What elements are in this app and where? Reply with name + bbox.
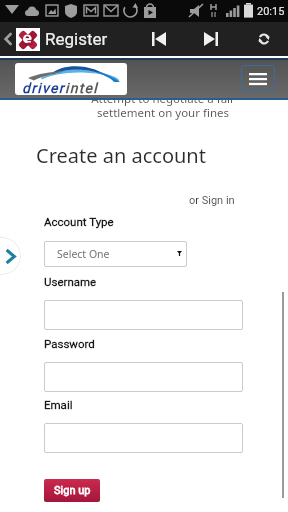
staticText: Account Type [44,215,114,228]
button[interactable]: or Sign in [189,194,235,207]
staticText: 20:15 [257,5,285,18]
staticText: driver [22,80,65,95]
staticText: Sign up [54,484,91,497]
button[interactable]: Next slide [0,237,21,275]
button[interactable]: Account Type [44,241,187,267]
button[interactable]: Next [201,29,221,49]
staticText: Register [45,29,108,49]
staticText: Username [44,275,97,288]
staticText: intel [65,80,99,95]
button[interactable]: Back [0,22,16,56]
staticText: Email [44,398,73,411]
staticText: intel [65,80,99,95]
button[interactable]: Previous [149,29,169,49]
staticText: Attempt to negotiate a fair settlement o… [19,91,288,120]
button[interactable]: Menu [241,65,275,92]
button[interactable]: Sign up [44,479,100,502]
button[interactable]: Refresh [254,29,274,49]
staticText: driver [22,80,65,95]
staticText: Password [44,337,95,350]
button[interactable] [44,362,243,392]
button[interactable] [44,423,243,453]
staticText: Create an account [36,142,206,169]
staticText: Select One [57,247,110,261]
button[interactable]: driverintel home [15,63,127,95]
button[interactable]: driverintel home [15,63,127,95]
button[interactable]: Menu [241,65,275,92]
button[interactable] [44,300,243,330]
